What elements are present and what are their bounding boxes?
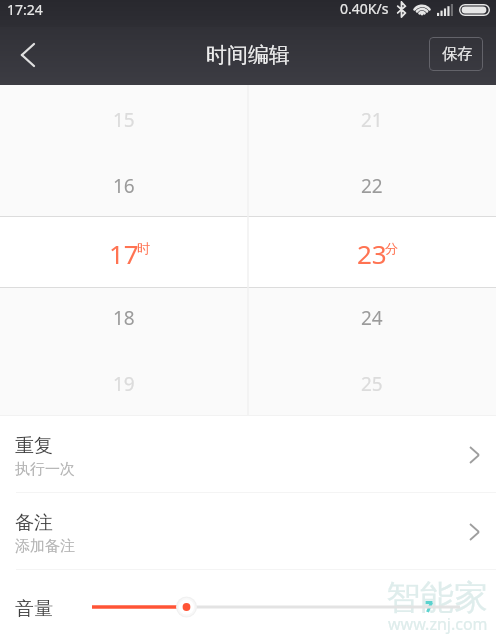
button[interactable]: 保存	[429, 37, 483, 71]
staticText: 22	[361, 173, 383, 199]
staticText: 音量	[15, 597, 53, 621]
button[interactable]: Back	[0, 28, 56, 84]
button[interactable]: 17	[0, 219, 248, 285]
button[interactable]: 22	[248, 153, 496, 219]
staticText: 17	[109, 236, 139, 271]
staticText: 23	[357, 236, 387, 271]
button[interactable]: 备注	[0, 493, 496, 570]
staticText: 0.40K/s	[340, 0, 389, 18]
staticText: 重复	[15, 434, 53, 458]
button[interactable]: 24	[248, 285, 496, 351]
staticText: 25	[361, 371, 383, 397]
staticText: 时间编辑	[206, 42, 290, 68]
staticText: 19	[113, 371, 135, 397]
staticText: www.znj.com	[388, 613, 488, 635]
button[interactable]: 18	[0, 285, 248, 351]
staticText: 24	[361, 305, 383, 331]
staticText: 保存	[442, 44, 473, 64]
staticText: 15	[113, 107, 135, 133]
staticText: 执行一次	[15, 460, 75, 479]
staticText: 分	[385, 240, 398, 256]
staticText: 时	[137, 240, 150, 256]
staticText: 17:24	[7, 0, 43, 19]
button[interactable]: Volume slider	[84, 594, 476, 620]
staticText: 智能家	[386, 576, 488, 619]
staticText: 18	[113, 305, 135, 331]
button[interactable]: 16	[0, 153, 248, 219]
button[interactable]: 23	[248, 219, 496, 285]
other: Open 重复	[470, 447, 479, 463]
staticText: 16	[113, 173, 135, 199]
other: Open 备注	[470, 524, 479, 540]
staticText: 添加备注	[15, 537, 75, 556]
button[interactable]: 重复	[0, 416, 496, 493]
staticText: 备注	[15, 511, 53, 535]
staticText: 21	[361, 107, 383, 133]
